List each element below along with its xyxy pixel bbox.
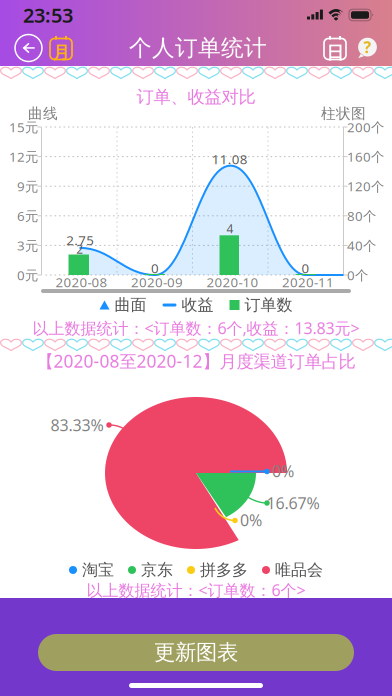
staticText: 0: [302, 259, 310, 277]
staticText: 2020-09: [131, 273, 183, 291]
staticText: 0个: [347, 266, 368, 284]
staticText: 12元: [9, 148, 38, 165]
staticText: 订单、收益对比: [136, 86, 255, 108]
staticText: 月: [52, 42, 69, 63]
staticText: 个人订单统计: [129, 34, 267, 62]
staticText: 2: [76, 241, 83, 257]
staticText: 唯品会: [275, 560, 323, 580]
staticText: 160个: [347, 148, 384, 165]
staticText: 120个: [347, 177, 384, 195]
staticText: 16.67%: [266, 492, 319, 514]
button[interactable]: 返回: [0, 30, 47, 65]
staticText: 以上数据统计：<订单数：6个,收益：13.83元>: [32, 317, 359, 339]
staticText: 11.08: [212, 150, 248, 168]
staticText: 4: [226, 220, 233, 236]
staticText: 【2020-08至2020-12】月度渠道订单占比: [36, 349, 355, 372]
staticText: 0元: [17, 266, 38, 284]
staticText: 80个: [347, 207, 376, 225]
staticText: 200个: [347, 118, 384, 136]
staticText: 曲面: [114, 295, 146, 315]
staticText: 0%: [272, 460, 294, 482]
staticText: 15元: [9, 118, 38, 136]
staticText: 2020-10: [206, 273, 258, 291]
staticText: 0%: [240, 509, 262, 531]
staticText: 23:53: [23, 2, 73, 28]
staticText: 订单数: [244, 295, 292, 315]
staticText: 2.75: [66, 231, 94, 249]
staticText: 京东: [141, 560, 173, 580]
staticText: 2020-11: [282, 273, 334, 291]
staticText: 淘宝: [82, 560, 114, 580]
staticText: 拼多多: [200, 560, 248, 580]
staticText: 6元: [17, 207, 38, 225]
staticText: 0: [151, 259, 159, 277]
staticText: 曲线: [28, 104, 58, 122]
button[interactable]: 按月查看: [47, 32, 75, 64]
staticText: 更新图表: [154, 639, 238, 666]
staticText: 3元: [17, 236, 38, 254]
staticText: 柱状图: [321, 104, 366, 122]
staticText: 83.33%: [50, 414, 103, 436]
staticText: ?: [363, 36, 371, 58]
button[interactable]: 按日查看: [321, 32, 349, 64]
staticText: 40个: [347, 236, 376, 254]
staticText: 2020-08: [55, 273, 107, 291]
staticText: 收益: [181, 295, 213, 315]
staticText: 9元: [17, 177, 38, 195]
staticText: 日: [326, 42, 343, 63]
staticText: 以上数据统计：<订单数：6个>: [86, 579, 305, 601]
button[interactable]: 帮助: [349, 33, 392, 62]
button[interactable]: 更新图表: [38, 634, 354, 671]
